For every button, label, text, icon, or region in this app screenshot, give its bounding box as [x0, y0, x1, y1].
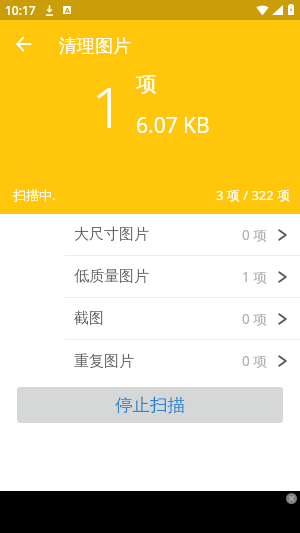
staticText: 6.07 KB — [136, 111, 210, 140]
staticText: 重复图片 — [74, 352, 134, 371]
staticText: 项 — [136, 71, 157, 97]
staticText: 扫描中. — [13, 186, 56, 204]
staticText: 0 项 — [242, 226, 267, 244]
staticText: 3 项 / 322 项 — [216, 186, 291, 204]
button[interactable]: 停止扫描 — [17, 387, 283, 423]
staticText: 10:17 — [5, 2, 36, 18]
staticText: 1 — [92, 68, 124, 144]
button[interactable]: 低质量图片 — [0, 256, 300, 298]
staticText: 低质量图片 — [74, 267, 149, 286]
staticText: 1 项 — [242, 268, 267, 286]
staticText: 停止扫描 — [115, 394, 185, 416]
staticText: 清理图片 — [59, 35, 131, 58]
button[interactable]: 大尺寸图片 — [0, 214, 300, 256]
button[interactable]: Back — [9, 30, 37, 58]
staticText: 截图 — [74, 309, 104, 328]
staticText: A — [65, 6, 70, 14]
staticText: 0 项 — [242, 310, 267, 328]
staticText: 大尺寸图片 — [74, 225, 149, 244]
button[interactable]: 截图 — [0, 298, 300, 340]
button[interactable]: Close ad — [286, 493, 297, 504]
staticText: 0 项 — [242, 352, 267, 370]
button[interactable]: 重复图片 — [0, 340, 300, 382]
